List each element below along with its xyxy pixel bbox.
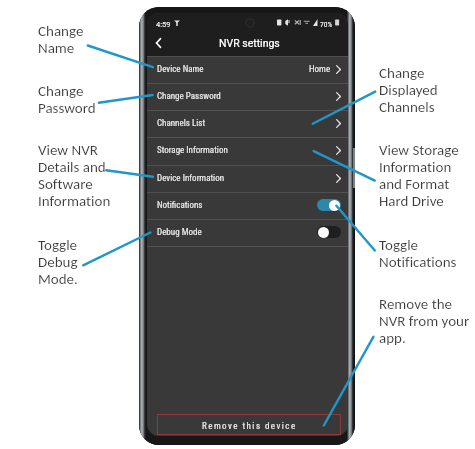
- staticText: Device Name: [157, 64, 204, 75]
- staticText: 70%: [320, 20, 333, 29]
- button[interactable]: Change Password: [147, 83, 348, 109]
- button[interactable]: Storage Information: [147, 137, 348, 163]
- staticText: Change Password: [157, 91, 221, 102]
- staticText: Storage Information: [157, 145, 228, 156]
- staticText: Notifications: [157, 200, 203, 211]
- button[interactable]: Remove this device: [157, 414, 341, 435]
- button[interactable]: Channels List: [147, 110, 348, 136]
- staticText: NVR settings: [219, 37, 280, 49]
- staticText: Change Displayed Channels: [379, 64, 438, 117]
- staticText: Toggle Debug Mode.: [38, 236, 78, 289]
- staticText: Channels List: [157, 118, 206, 129]
- button[interactable]: Device Information: [147, 165, 348, 191]
- staticText: Remove this device: [202, 421, 297, 432]
- button[interactable]: Notifications: [147, 192, 348, 218]
- button[interactable]: Device Name: [147, 56, 348, 82]
- staticText: Toggle Notifications: [379, 236, 457, 272]
- button[interactable]: Back: [150, 34, 167, 51]
- staticText: Remove the NVR from your app.: [379, 295, 470, 348]
- staticText: Change Password: [38, 82, 96, 118]
- staticText: Change Name: [38, 22, 84, 58]
- button[interactable]: Debug Mode: [147, 219, 348, 245]
- staticText: Device Information: [157, 173, 225, 184]
- staticText: View Storage Information and Format Hard…: [379, 141, 459, 211]
- staticText: 4:59: [156, 20, 171, 29]
- staticText: View NVR Details and Software Informatio…: [38, 141, 111, 211]
- staticText: Home: [309, 64, 331, 75]
- staticText: Debug Mode: [157, 227, 202, 238]
